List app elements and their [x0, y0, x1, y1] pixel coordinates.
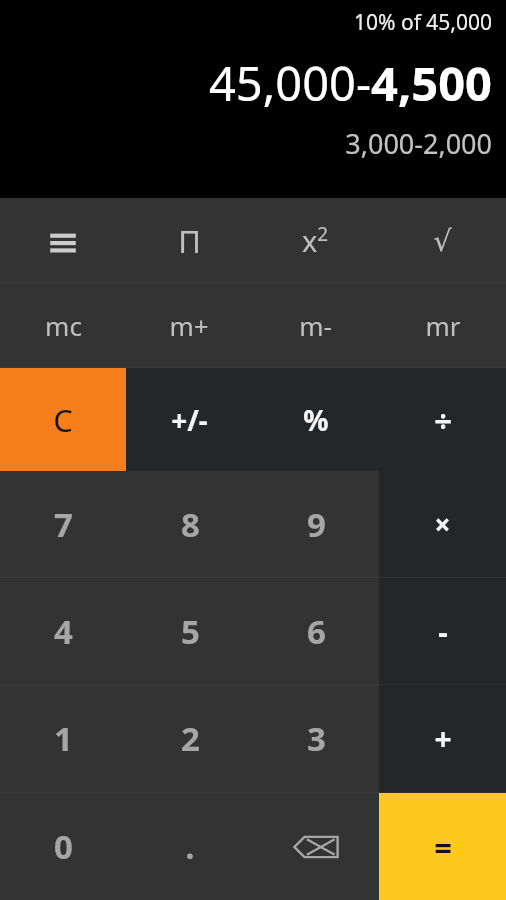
staticText: × [434, 505, 451, 543]
staticText: 5 [181, 609, 200, 654]
staticText: = [434, 826, 452, 868]
staticText: - [438, 611, 448, 652]
button[interactable]: % [252, 368, 379, 471]
button[interactable]: 1 [0, 685, 127, 792]
button[interactable]: +/- [126, 368, 252, 471]
staticText: ÷ [434, 399, 452, 441]
staticText: 6 [307, 609, 326, 654]
button[interactable]: m- [252, 284, 379, 367]
staticText: 3 [307, 716, 326, 761]
staticText: 9 [307, 502, 326, 547]
button[interactable]: 0 [0, 793, 127, 900]
button[interactable]: = [379, 793, 506, 900]
staticText: 2 [181, 716, 200, 761]
button[interactable]: ÷ [379, 368, 506, 471]
staticText: C [53, 399, 73, 441]
button[interactable]: m+ [126, 284, 252, 367]
button[interactable]: Backspace [253, 793, 379, 900]
staticText: 45,000-4,500 [208, 51, 492, 115]
button[interactable]: mc [0, 284, 126, 367]
staticText: 10% of 45,000 [353, 8, 492, 37]
staticText: m+ [169, 308, 209, 343]
staticText: 7 [54, 502, 73, 547]
staticText: . [185, 824, 195, 869]
button[interactable]: 4 [0, 578, 127, 684]
staticText: √ [433, 224, 452, 258]
button[interactable]: Menu [0, 198, 126, 283]
button[interactable]: × [379, 471, 506, 577]
staticText: + [434, 718, 452, 759]
button[interactable]: + [379, 685, 506, 792]
staticText: 1 [54, 716, 73, 761]
button[interactable]: Π [126, 198, 252, 283]
button[interactable]: x2 [252, 198, 379, 283]
button[interactable]: C [0, 368, 126, 471]
button[interactable]: 3 [253, 685, 379, 792]
button[interactable]: 6 [253, 578, 379, 684]
button[interactable]: 7 [0, 471, 127, 577]
staticText: Π [178, 220, 201, 262]
staticText: 8 [181, 502, 200, 547]
button[interactable]: √ [379, 198, 506, 283]
button[interactable]: 8 [127, 471, 253, 577]
staticText: mc [45, 308, 82, 343]
staticText: mr [425, 308, 461, 343]
button[interactable]: 9 [253, 471, 379, 577]
staticText: +/- [171, 401, 208, 439]
button[interactable]: . [127, 793, 253, 900]
staticText: 4 [54, 609, 73, 654]
staticText: % [303, 401, 329, 439]
staticText: 3,000-2,000 [345, 125, 492, 162]
button[interactable]: mr [379, 284, 506, 367]
button[interactable]: 2 [127, 685, 253, 792]
staticText: 0 [54, 824, 73, 869]
staticText: x2 [302, 221, 329, 261]
staticText: m- [299, 308, 332, 343]
button[interactable]: 5 [127, 578, 253, 684]
button[interactable]: - [379, 578, 506, 684]
